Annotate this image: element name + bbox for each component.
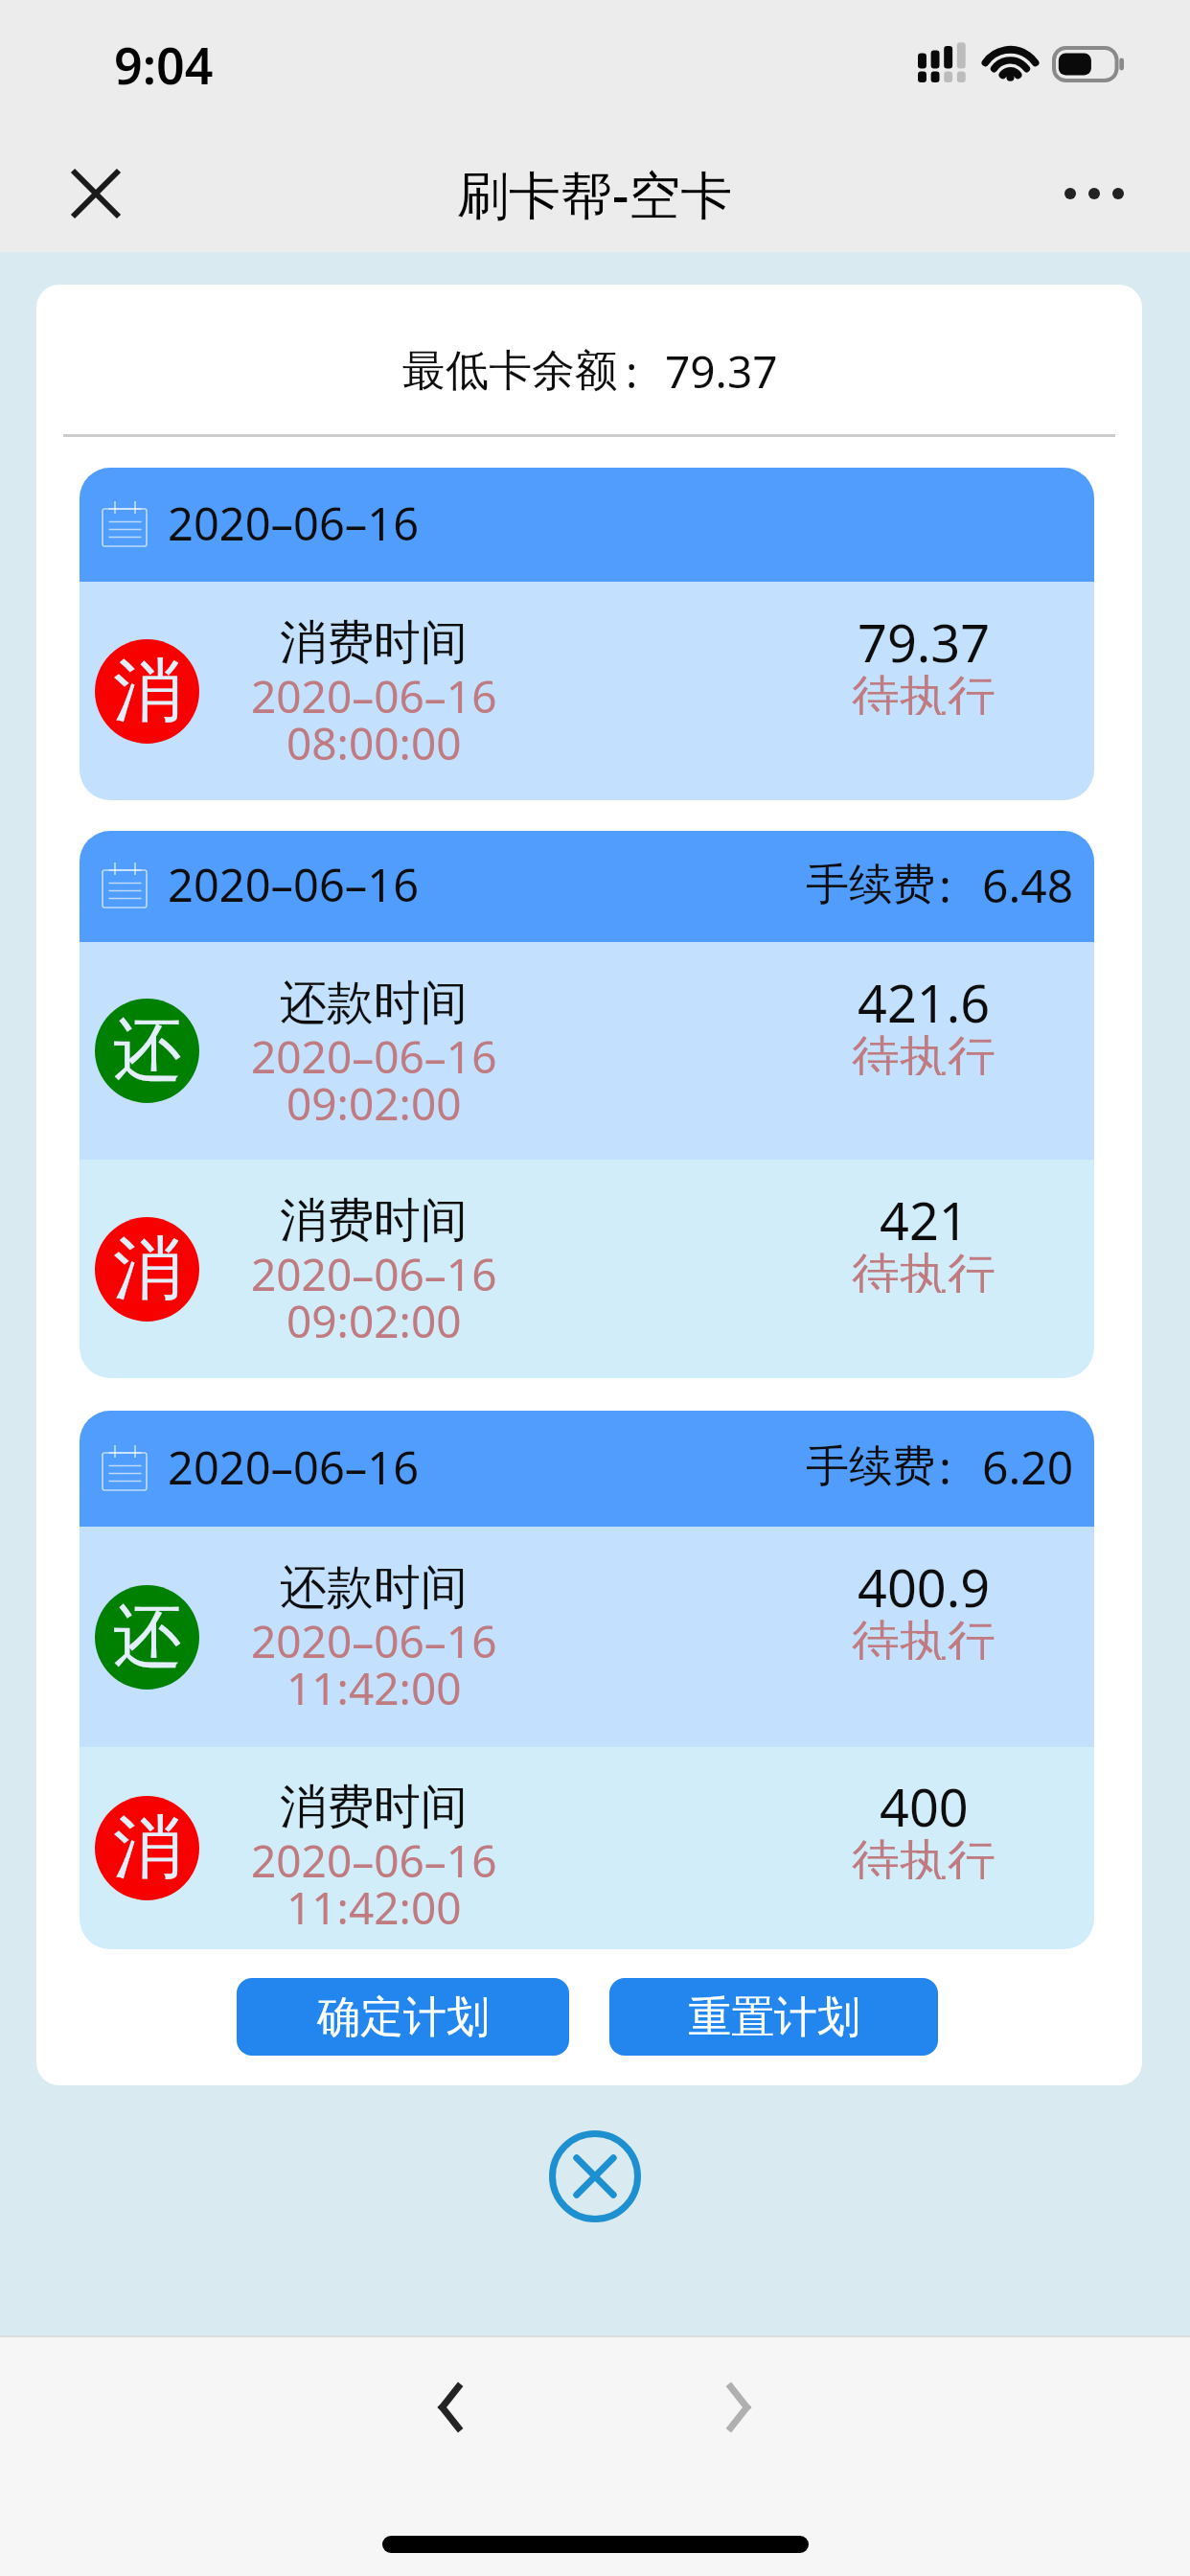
button[interactable]: Forward [685,2354,792,2461]
staticText: : [626,341,638,402]
staticText: 待执行 [852,1613,995,1660]
staticText: 09:02:00 [286,1073,462,1120]
staticText: 待执行 [852,1246,995,1293]
button[interactable]: 2020–06–16 [80,1411,1094,1527]
button[interactable]: 还 [80,1527,1094,1747]
staticText: 2020–06–16 [251,1830,497,1877]
staticText: 79.37 [858,607,991,668]
staticText: 421.6 [858,967,991,1028]
staticText: 还款时间 [280,974,468,1026]
staticText: 待执行 [852,1028,995,1075]
staticText: 400.9 [858,1552,991,1613]
staticText: 刷卡帮-空卡 [457,158,733,229]
staticText: 421 [880,1184,969,1246]
staticText: 手续费 [806,858,935,912]
staticText: 还 [113,1594,182,1681]
staticText: 6.20 [982,1436,1074,1498]
button[interactable]: Close [59,157,132,230]
staticText: : [939,1436,951,1498]
staticText: 消 [113,648,182,735]
staticText: 消费时间 [280,613,468,666]
staticText: 消 [113,1226,182,1313]
staticText: 消 [113,1805,182,1892]
staticText: 2020–06–16 [251,1611,497,1658]
staticText: 11:42:00 [286,1877,462,1924]
staticText: 2020–06–16 [251,1026,497,1073]
staticText: 2020–06–16 [251,666,497,713]
staticText: 消费时间 [280,1778,468,1830]
staticText: 79.37 [665,341,778,402]
staticText: : [939,854,951,916]
button[interactable]: 消 [80,582,1094,800]
button[interactable]: More options [1058,157,1131,230]
staticText: 手续费 [806,1439,935,1494]
staticText: 9:04 [114,31,214,99]
button[interactable]: Close [549,2130,641,2222]
button[interactable]: 消 [80,1747,1094,1949]
button[interactable]: 重置计划 [609,1978,938,2056]
staticText: 400 [880,1771,969,1832]
button[interactable]: 消 [80,1160,1094,1378]
staticText: 2020–06–16 [251,1244,497,1291]
staticText: 消费时间 [280,1191,468,1244]
button[interactable]: 还 [80,942,1094,1160]
staticText: 08:00:00 [286,713,462,760]
staticText: 2020–06–16 [168,1437,420,1498]
staticText: 待执行 [852,668,995,715]
staticText: 2020–06–16 [168,854,420,915]
staticText: 待执行 [852,1832,995,1879]
staticText: 6.48 [982,854,1074,916]
staticText: 重置计划 [688,1990,860,2045]
button[interactable]: Back [397,2354,504,2461]
staticText: 2020–06–16 [168,493,420,554]
staticText: 11:42:00 [286,1658,462,1705]
staticText: 最低卡余额 [402,344,618,399]
button[interactable]: 2020–06–16 [80,831,1094,942]
staticText: 还款时间 [280,1558,468,1611]
button[interactable]: 确定计划 [237,1978,569,2056]
staticText: 还 [113,1007,182,1094]
button[interactable]: 2020–06–16 [80,468,1094,582]
staticText: 09:02:00 [286,1291,462,1338]
staticText: 确定计划 [317,1990,490,2045]
